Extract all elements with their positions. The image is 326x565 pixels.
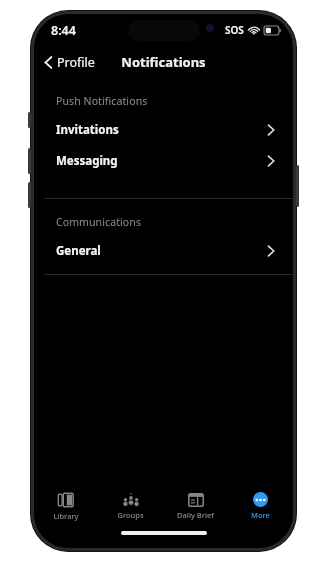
staticText: SOS [225,23,244,37]
staticText: 8:44 [51,22,76,39]
button[interactable]: General [34,235,293,266]
staticText: Communications [56,215,142,229]
staticText: Library [53,511,79,521]
button[interactable]: Groups [98,484,163,528]
staticText: More [251,510,270,520]
staticText: Push Notifications [56,94,148,108]
button[interactable]: Profile [34,50,103,75]
button[interactable]: Library [34,484,98,528]
button[interactable]: Invitations [34,114,293,145]
staticText: General [56,243,267,259]
staticText: Groups [117,510,144,520]
staticText: Daily Brief [177,510,214,520]
staticText: Notifications [121,53,206,71]
staticText: Messaging [56,153,267,169]
staticText: Invitations [56,122,267,138]
button[interactable]: Daily Brief [163,484,228,528]
staticText: Profile [57,54,95,71]
button[interactable]: More [228,484,293,528]
button[interactable]: Messaging [34,145,293,176]
